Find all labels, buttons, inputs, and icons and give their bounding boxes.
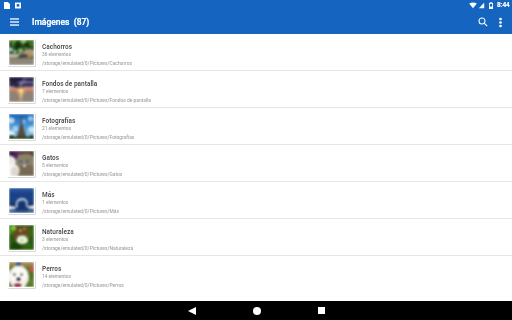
button[interactable]: Fondos de pantalla [0, 71, 512, 107]
staticText: Naturaleza [42, 228, 74, 236]
staticText: /storage/emulated/0/Pictures/Cachorros [42, 60, 132, 66]
staticText: Perros [42, 265, 62, 273]
staticText: Fotografías [42, 117, 76, 125]
staticText: /storage/emulated/0/Pictures/Fotografías [42, 134, 135, 140]
staticText: Gatos [42, 154, 60, 162]
button[interactable]: Naturaleza [0, 219, 512, 255]
staticText: /storage/emulated/0/Pictures/Gatos [42, 171, 123, 177]
button[interactable]: Search [477, 10, 489, 34]
staticText: Cachorros [42, 43, 73, 51]
staticText: 8:44 [497, 1, 510, 9]
staticText: /storage/emulated/0/Pictures/Naturaleza [42, 245, 134, 251]
staticText: Imágenes (87) [32, 17, 90, 27]
button[interactable]: Home [224, 301, 289, 320]
button[interactable]: Recent apps [289, 301, 354, 320]
staticText: /storage/emulated/0/Pictures/Más [42, 208, 119, 214]
button[interactable]: More options [489, 10, 512, 34]
staticText: Más [42, 191, 55, 199]
button[interactable]: Open navigation drawer [0, 10, 29, 34]
button[interactable]: Más [0, 182, 512, 218]
staticText: 36 elementos [42, 52, 71, 58]
staticText: 5 elementos [42, 163, 69, 169]
button[interactable]: Cachorros [0, 34, 512, 70]
staticText: 14 elementos [42, 274, 71, 280]
staticText: 7 elementos [42, 89, 69, 95]
button[interactable]: Perros [0, 256, 512, 292]
staticText: /storage/emulated/0/Pictures/Fondos de p… [42, 97, 151, 103]
staticText: Fondos de pantalla [42, 80, 98, 88]
staticText: 3 elementos [42, 237, 69, 243]
button[interactable]: Gatos [0, 145, 512, 181]
button[interactable]: Back [159, 301, 224, 320]
staticText: /storage/emulated/0/Pictures/Perros [42, 282, 124, 288]
staticText: 1 elementos [42, 200, 69, 206]
staticText: 21 elementos [42, 126, 71, 132]
button[interactable]: Fotografías [0, 108, 512, 144]
